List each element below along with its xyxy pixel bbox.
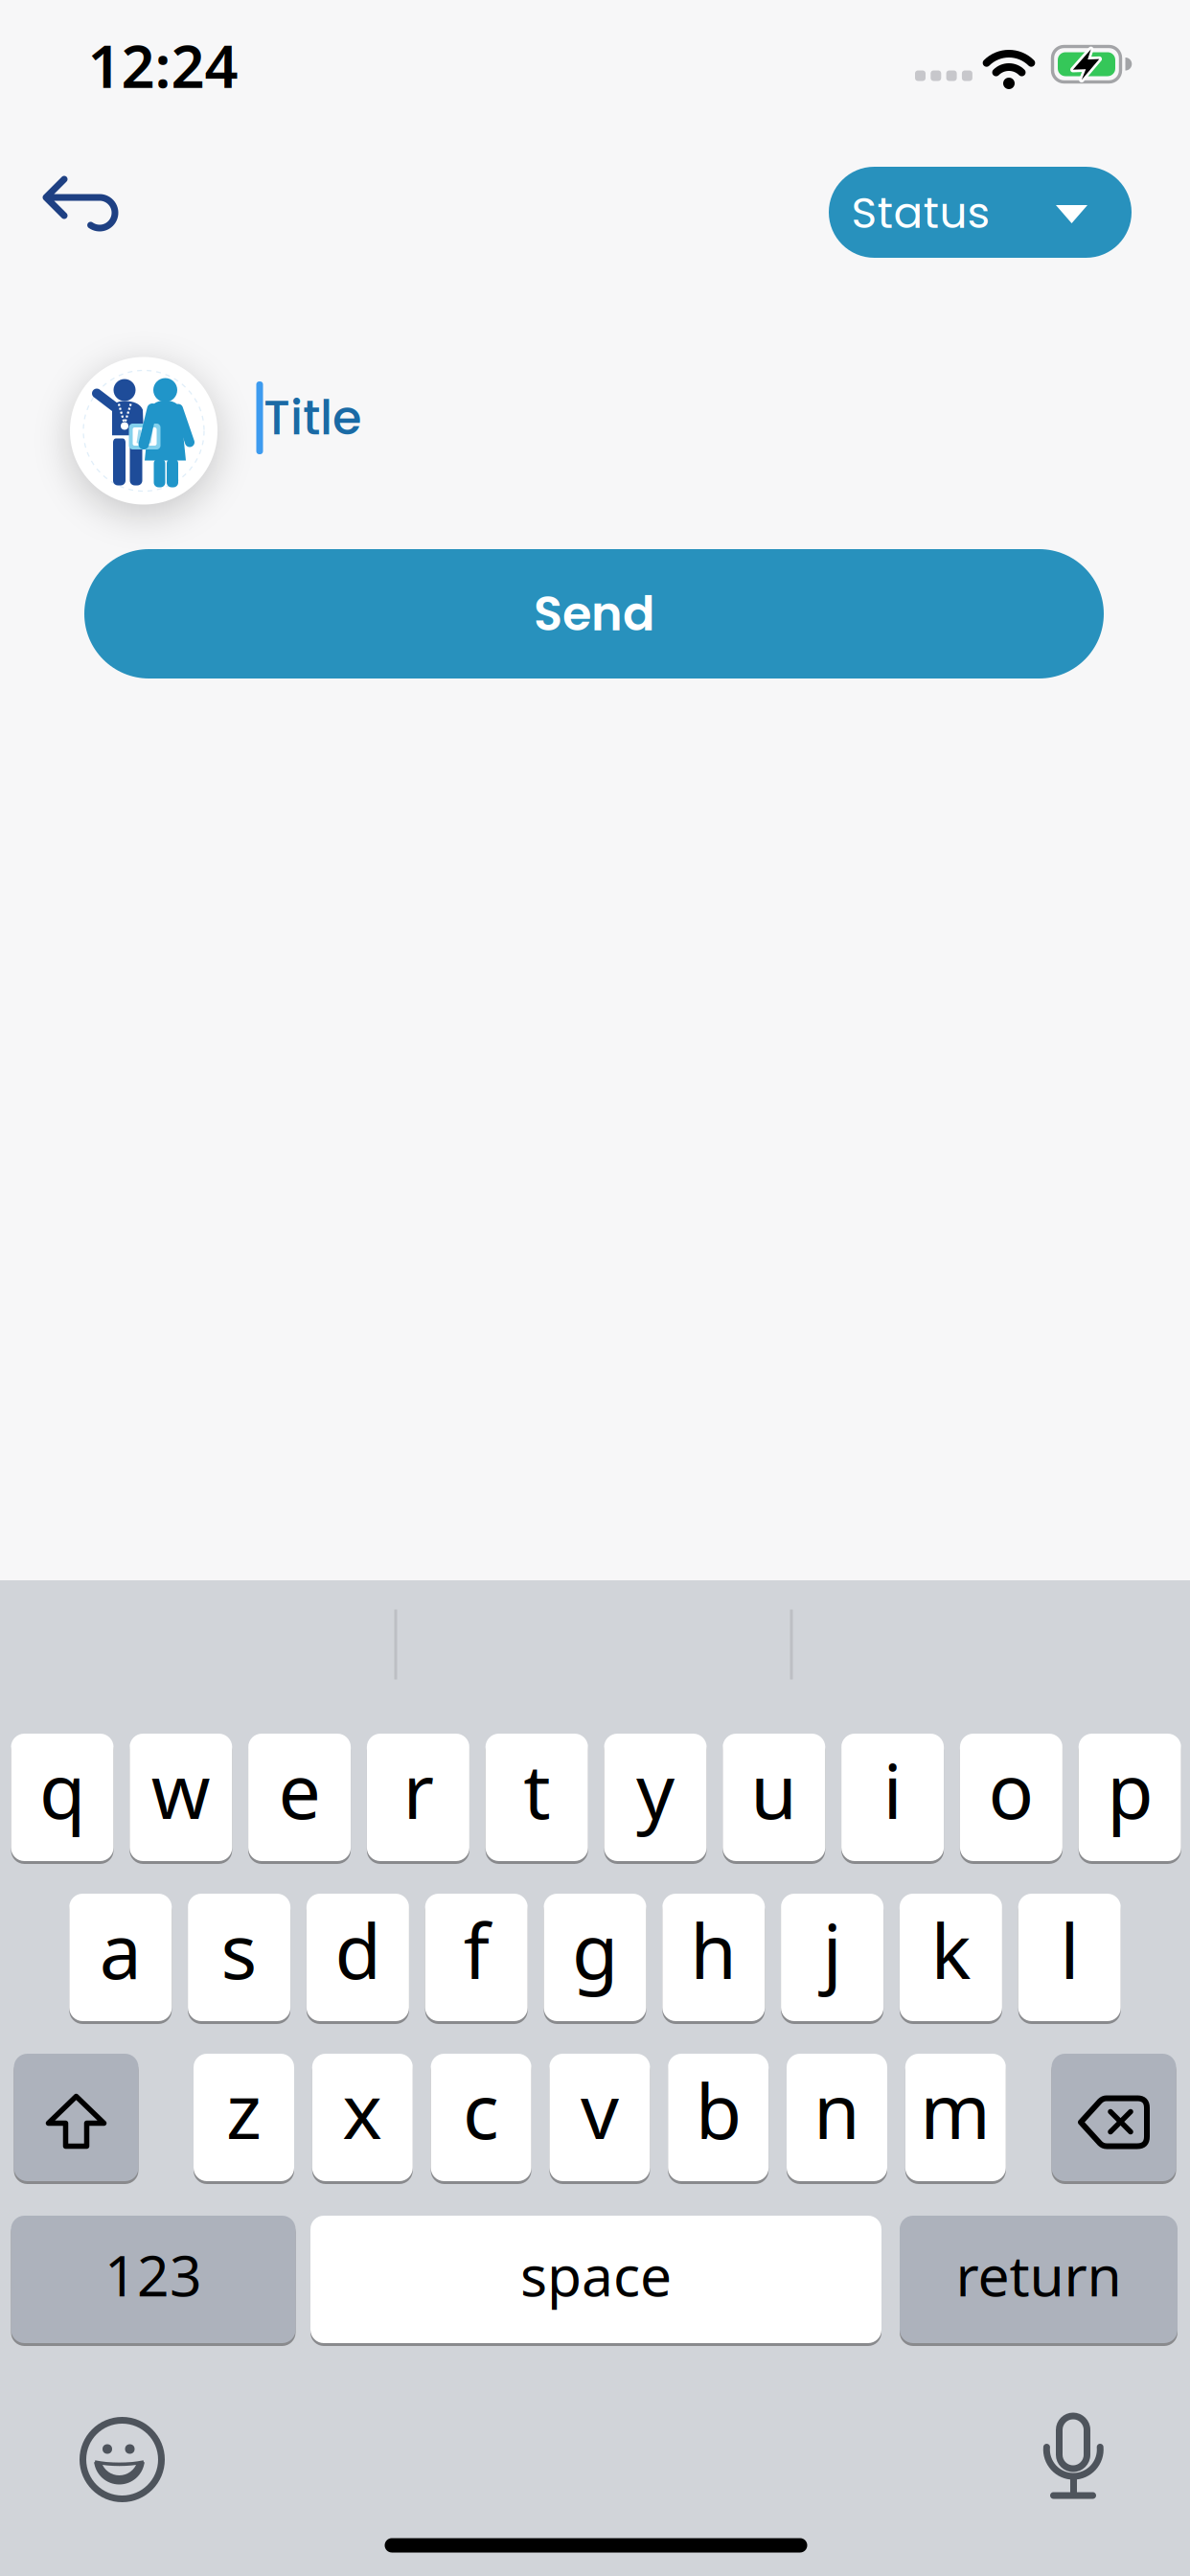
staticText: space: [520, 2237, 672, 2312]
button[interactable]: Emoji: [79, 2415, 165, 2501]
staticText: l: [1060, 1900, 1079, 2000]
button[interactable]: x: [312, 2052, 413, 2183]
staticText: n: [813, 2060, 860, 2160]
button[interactable]: Title: [240, 365, 1131, 471]
button[interactable]: o: [960, 1732, 1062, 1863]
button[interactable]: f: [425, 1892, 528, 2023]
staticText: 123: [104, 2237, 202, 2312]
button[interactable]: t: [485, 1732, 588, 1863]
staticText: u: [751, 1740, 797, 1840]
staticText: p: [1107, 1740, 1153, 1840]
staticText: k: [931, 1900, 971, 2000]
button[interactable]: c: [431, 2052, 531, 2183]
button[interactable]: l: [1018, 1892, 1121, 2023]
button[interactable]: q: [11, 1732, 114, 1863]
button[interactable]: g: [544, 1892, 646, 2023]
staticText: x: [342, 2060, 383, 2160]
staticText: Title: [263, 385, 361, 451]
staticText: m: [920, 2060, 991, 2160]
staticText: r: [403, 1740, 433, 1840]
staticText: f: [463, 1900, 489, 2000]
staticText: j: [823, 1900, 842, 2000]
button[interactable]: Back: [13, 147, 148, 262]
staticText: a: [99, 1900, 142, 2000]
button[interactable]: Delete: [1052, 2052, 1176, 2183]
staticText: v: [581, 2060, 619, 2160]
button[interactable]: 123: [11, 2214, 296, 2345]
button[interactable]: Send: [84, 549, 1104, 678]
button[interactable]: j: [781, 1892, 883, 2023]
button[interactable]: p: [1079, 1732, 1181, 1863]
staticText: g: [572, 1900, 618, 2000]
staticText: w: [151, 1740, 211, 1840]
button[interactable]: Shift: [14, 2052, 138, 2183]
button[interactable]: space: [310, 2214, 881, 2345]
button[interactable]: b: [668, 2052, 769, 2183]
staticText: Send: [534, 581, 654, 647]
button[interactable]: a: [69, 1892, 172, 2023]
staticText: b: [695, 2060, 741, 2160]
button[interactable]: Dictation: [1042, 2410, 1104, 2500]
button[interactable]: i: [841, 1732, 944, 1863]
staticText: c: [463, 2060, 499, 2160]
button[interactable]: r: [367, 1732, 469, 1863]
button[interactable]: n: [787, 2052, 887, 2183]
button[interactable]: return: [900, 2214, 1178, 2345]
staticText: Status: [851, 182, 990, 243]
button[interactable]: h: [662, 1892, 765, 2023]
staticText: o: [988, 1740, 1034, 1840]
staticText: z: [226, 2060, 262, 2160]
staticText: e: [278, 1740, 321, 1840]
button[interactable]: v: [549, 2052, 650, 2183]
button[interactable]: z: [194, 2052, 294, 2183]
button[interactable]: w: [130, 1732, 232, 1863]
button[interactable]: m: [905, 2052, 1006, 2183]
button[interactable]: u: [723, 1732, 825, 1863]
staticText: s: [221, 1900, 257, 2000]
staticText: t: [523, 1740, 550, 1840]
staticText: d: [335, 1900, 381, 2000]
button[interactable]: Status: [829, 167, 1132, 258]
button[interactable]: e: [248, 1732, 351, 1863]
staticText: h: [690, 1900, 737, 2000]
button[interactable]: k: [900, 1892, 1002, 2023]
staticText: y: [636, 1740, 675, 1840]
button[interactable]: y: [604, 1732, 707, 1863]
staticText: i: [883, 1740, 902, 1840]
button[interactable]: d: [307, 1892, 409, 2023]
staticText: q: [39, 1740, 85, 1840]
staticText: return: [956, 2237, 1121, 2312]
button[interactable]: s: [188, 1892, 290, 2023]
staticText: 12:24: [88, 26, 238, 104]
